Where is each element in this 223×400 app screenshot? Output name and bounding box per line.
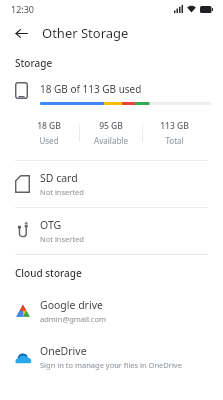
staticText: Available: [94, 135, 128, 146]
staticText: Total: [165, 135, 184, 146]
staticText: Sign in to manage your files in OneDrive: [40, 360, 182, 370]
staticText: 95 GB: [99, 120, 123, 132]
staticText: OneDrive: [40, 344, 87, 358]
staticText: Google drive: [40, 298, 103, 312]
button[interactable]: 18 GB of 113 GB used: [0, 80, 223, 107]
staticText: Used: [39, 135, 59, 146]
staticText: 12:30: [11, 3, 35, 15]
staticText: admin@gmail.com: [40, 314, 107, 324]
button[interactable]: Google drive: [0, 288, 223, 334]
staticText: Not inserted: [40, 187, 84, 197]
staticText: Cloud storage: [15, 266, 82, 280]
staticText: OTG: [40, 218, 62, 232]
button[interactable]: Back: [10, 22, 32, 44]
staticText: Other Storage: [42, 24, 129, 42]
staticText: SD card: [40, 171, 78, 185]
staticText: 18 GB of 113 GB used: [40, 82, 142, 96]
button[interactable]: OneDrive: [0, 334, 223, 380]
staticText: Storage: [15, 56, 53, 70]
button[interactable]: OTG: [0, 208, 223, 254]
staticText: 113 GB: [160, 120, 189, 132]
staticText: 18 GB: [37, 120, 61, 132]
staticText: Not inserted: [40, 234, 84, 244]
button[interactable]: SD card: [0, 161, 223, 207]
